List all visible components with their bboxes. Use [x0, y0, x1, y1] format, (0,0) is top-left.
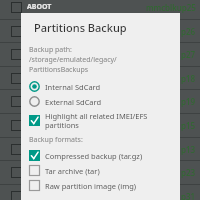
staticText: PartitionsBackups [29, 65, 89, 75]
button[interactable]: Compressed backup (tar.gz) [21, 148, 180, 163]
staticText: Tar archive (tar) [45, 166, 100, 176]
staticText: External SdCard [45, 97, 102, 107]
staticText: Compressed backup (tar.gz) [45, 151, 143, 161]
staticText: p27 [181, 49, 196, 60]
button[interactable]: Tar archive (tar) [21, 163, 180, 178]
button[interactable]: Internal SdCard [21, 79, 180, 94]
button[interactable]: ABOOT [0, 0, 200, 19]
button[interactable]: Raw partition image (img) [21, 178, 180, 193]
staticText: mmcblkup25 [146, 2, 196, 13]
staticText: /storage/emulated/legacy/ [29, 55, 117, 65]
staticText: p13 [181, 144, 196, 155]
button[interactable]: p19 [0, 89, 200, 113]
staticText: Highlight all related IMEI/EFS partition… [45, 111, 148, 130]
staticText: p31 [181, 191, 196, 200]
button[interactable]: p13 [0, 137, 200, 161]
staticText: p19 [181, 96, 196, 107]
staticText: Internal SdCard [45, 82, 101, 92]
button[interactable]: External SdCard [21, 94, 180, 109]
staticText: p18 [181, 73, 196, 84]
staticText: ABOOT [27, 2, 52, 12]
staticText: Backup formats: [29, 135, 83, 145]
button[interactable]: p15 [0, 113, 200, 137]
staticText: Partitions Backup [34, 20, 127, 35]
button[interactable]: Highlight all related IMEI/EFS partition… [21, 109, 180, 132]
staticText: Backup path: [29, 45, 72, 55]
button[interactable]: p18 [0, 66, 200, 90]
staticText: p23 [181, 167, 196, 178]
staticText: p26 [181, 26, 196, 37]
button[interactable]: p23 [0, 160, 200, 184]
staticText: Raw partition image (img) [45, 181, 137, 191]
staticText: p15 [181, 120, 196, 131]
button[interactable]: p27 [0, 42, 200, 66]
button[interactable]: p31 [0, 184, 200, 200]
button[interactable]: p26 [0, 19, 200, 43]
